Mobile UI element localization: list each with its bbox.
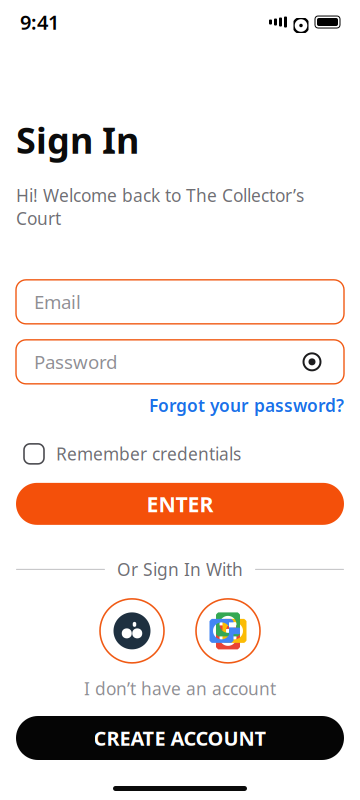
button[interactable]: ENTER	[16, 483, 344, 525]
button[interactable]: Sign in with Google	[196, 599, 260, 663]
staticText: Forgot your password?	[149, 394, 344, 417]
button[interactable]: Forgot your password?	[149, 394, 344, 417]
staticText: Hi! Welcome back to The Collector’s Cour…	[16, 184, 304, 230]
button[interactable]: Show password	[298, 348, 326, 376]
staticText: Sign In	[16, 116, 139, 164]
staticText: Email	[34, 289, 81, 314]
staticText: Or Sign In With	[117, 558, 243, 581]
staticText: Remember credentials	[56, 442, 241, 465]
staticText: I don’t have an account	[84, 677, 276, 700]
staticText: 9:41	[20, 9, 59, 35]
button[interactable]: Remember credentials	[0, 439, 360, 469]
button[interactable]: Sign in with Apple	[100, 599, 164, 663]
staticText: CREATE ACCOUNT	[93, 725, 266, 751]
staticText: Password	[34, 349, 117, 374]
staticText: ENTER	[146, 490, 213, 518]
button[interactable]: CREATE ACCOUNT	[16, 716, 344, 760]
